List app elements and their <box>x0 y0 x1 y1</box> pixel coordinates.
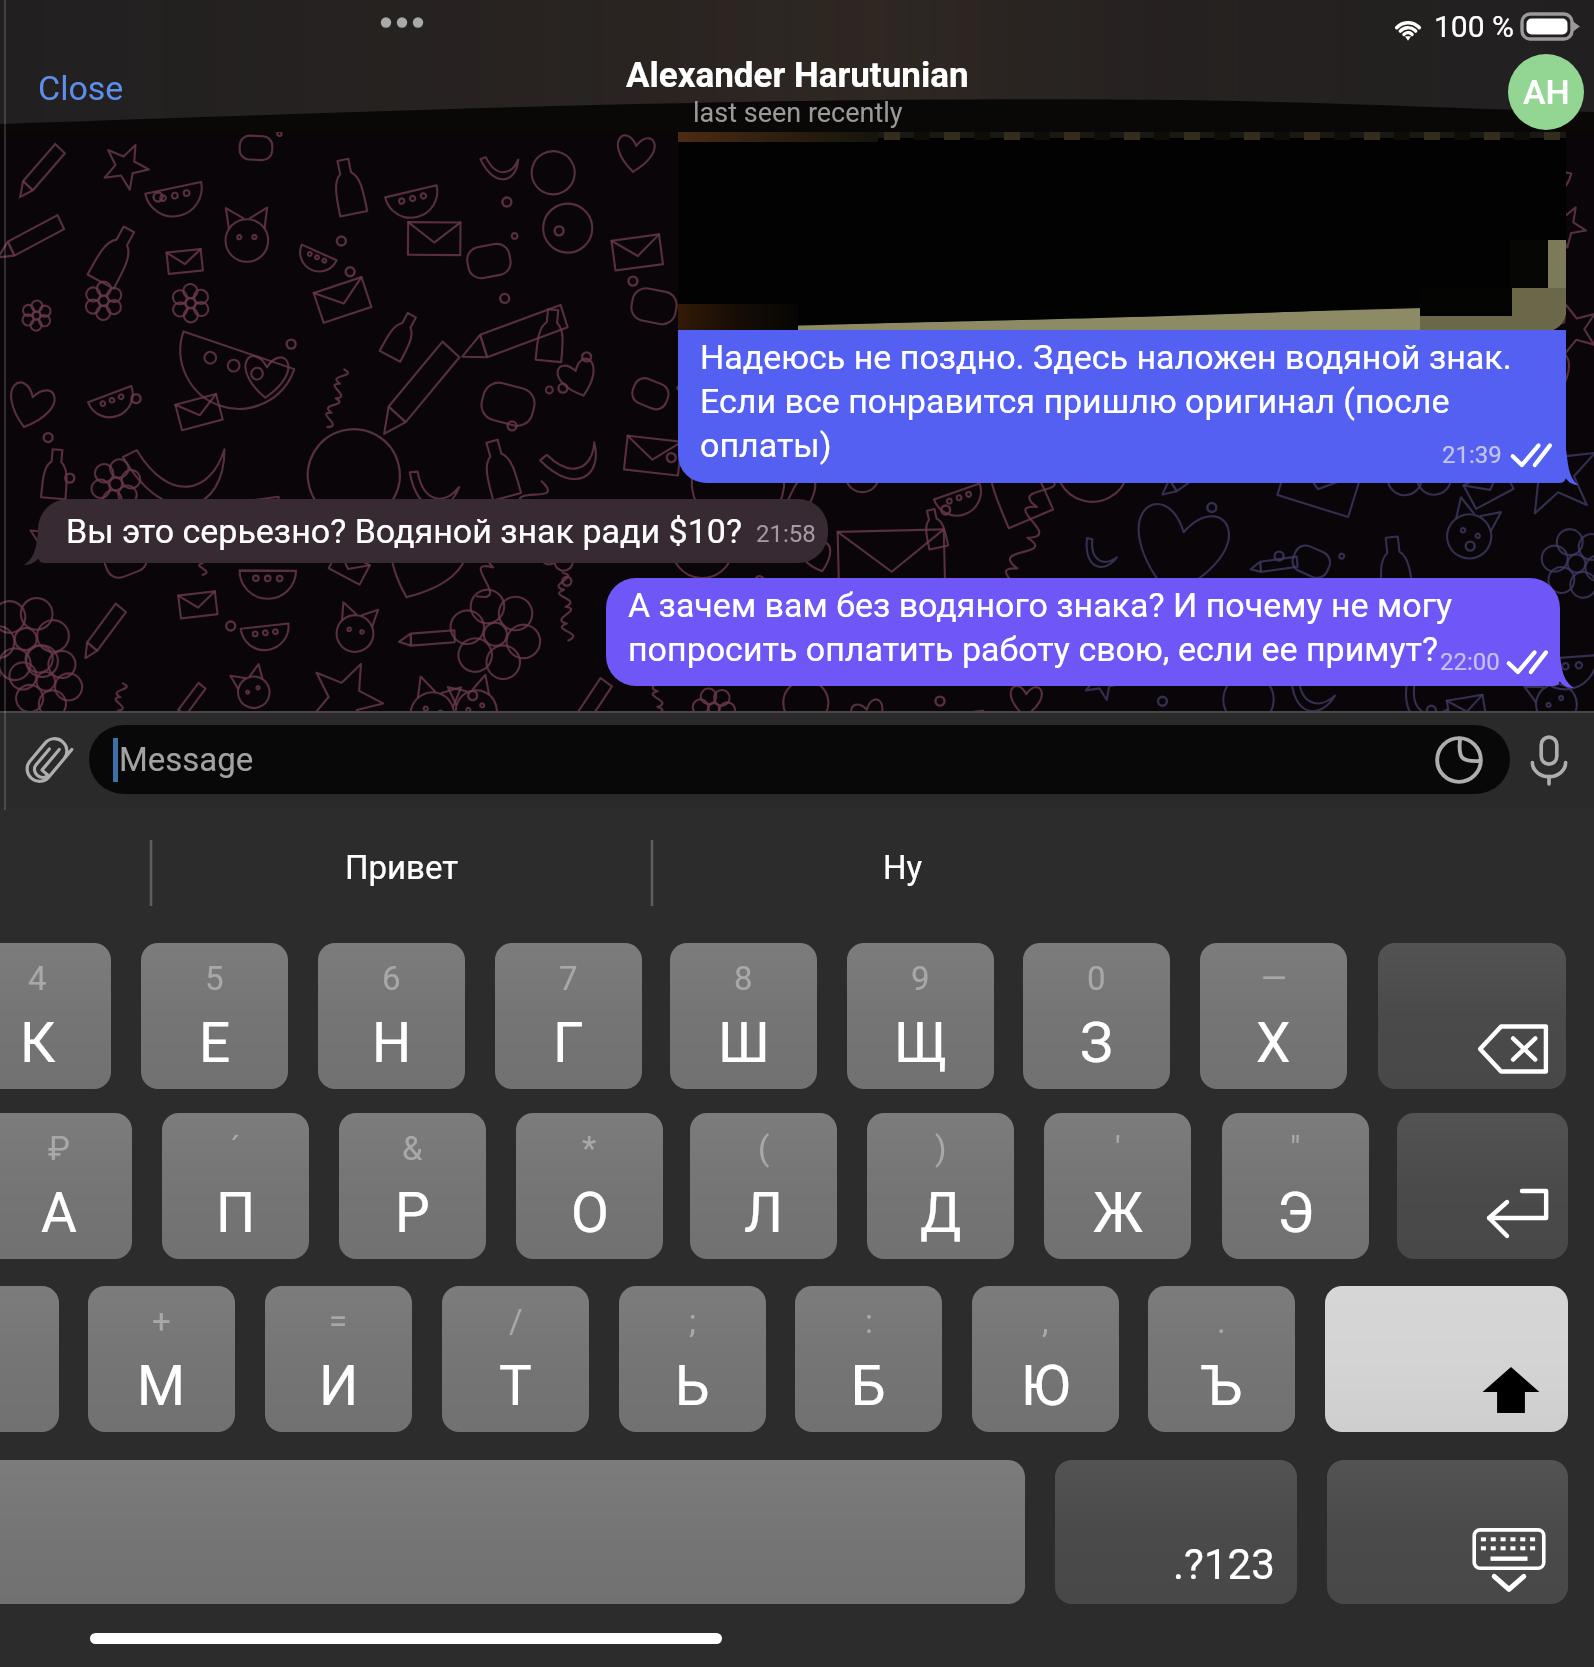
staticText: Ж <box>1093 1181 1143 1245</box>
staticText: Х <box>1256 1011 1291 1075</box>
staticText: З <box>1080 1011 1113 1075</box>
staticText: — <box>1261 959 1287 998</box>
button[interactable]: Б <box>795 1286 942 1432</box>
staticText: Привет <box>345 848 459 887</box>
button[interactable]: Р <box>339 1113 486 1259</box>
staticText: Надеюсь не поздно. Здесь наложен водяной… <box>700 337 1512 465</box>
staticText: И <box>319 1354 359 1418</box>
staticText: ₽ <box>48 1129 70 1168</box>
button[interactable]: Message <box>89 725 1510 794</box>
staticText: Вы это серьезно? Водяной знак ради $10? <box>66 511 742 551</box>
button[interactable]: М <box>88 1286 235 1432</box>
button[interactable]: А <box>0 1113 132 1259</box>
staticText: ; <box>689 1302 696 1341</box>
staticText: Message <box>119 740 254 779</box>
staticText: Д <box>920 1181 962 1245</box>
button[interactable]: Ж <box>1044 1113 1191 1259</box>
staticText: Ну <box>883 848 923 887</box>
other: Hide keyboard <box>1327 1460 1568 1604</box>
button[interactable] <box>1325 1286 1568 1432</box>
staticText: Н <box>372 1011 412 1075</box>
button[interactable]: Attach <box>8 721 86 799</box>
button[interactable]: Е <box>141 943 288 1089</box>
button[interactable]: Х <box>1200 943 1347 1089</box>
button[interactable]: Щ <box>847 943 994 1089</box>
other: Return <box>1397 1113 1568 1259</box>
staticText: Е <box>199 1011 231 1075</box>
button[interactable]: Т <box>442 1286 589 1432</box>
staticText: 7 <box>559 959 578 998</box>
other: Shift <box>1325 1286 1568 1432</box>
staticText: Г <box>553 1011 584 1075</box>
button[interactable]: О <box>516 1113 663 1259</box>
staticText: 4 <box>28 959 47 998</box>
button[interactable]: Stickers <box>1430 731 1488 789</box>
staticText: К <box>20 1011 56 1075</box>
staticText: " <box>1290 1129 1301 1168</box>
staticText: Ю <box>1021 1354 1071 1418</box>
button[interactable]: Г <box>495 943 642 1089</box>
button[interactable]: Л <box>690 1113 837 1259</box>
staticText: / <box>509 1302 523 1341</box>
button[interactable]: Д <box>867 1113 1014 1259</box>
button[interactable]: Ъ <box>1148 1286 1295 1432</box>
button[interactable]: Close <box>38 68 124 108</box>
button[interactable] <box>1378 943 1566 1089</box>
button[interactable] <box>0 1460 1025 1604</box>
staticText: Р <box>395 1181 430 1245</box>
staticText: & <box>402 1129 423 1168</box>
staticText: 21:58 <box>756 520 816 548</box>
button[interactable]: Ь <box>619 1286 766 1432</box>
staticText: .?123 <box>1173 1540 1275 1589</box>
staticText: ( <box>758 1129 770 1168</box>
other: Backspace <box>1378 943 1566 1089</box>
button[interactable]: Voice message <box>1514 725 1584 795</box>
staticText: ´ <box>230 1129 241 1168</box>
staticText: Alexander Harutunian <box>626 55 969 96</box>
button[interactable]: Ну <box>652 808 1153 930</box>
staticText: 21:39 <box>1442 441 1502 469</box>
button[interactable]: Н <box>318 943 465 1089</box>
staticText: 8 <box>734 959 753 998</box>
button[interactable]: И <box>265 1286 412 1432</box>
staticText: Ш <box>718 1011 770 1075</box>
staticText: , <box>1042 1302 1049 1341</box>
staticText: = <box>329 1302 348 1341</box>
button[interactable]: .?123 <box>1055 1460 1297 1604</box>
staticText: 9 <box>911 959 930 998</box>
staticText: П <box>216 1181 256 1245</box>
staticText: + <box>152 1302 171 1341</box>
staticText: Б <box>851 1354 886 1418</box>
staticText: О <box>571 1181 609 1245</box>
button[interactable]: Ш <box>670 943 817 1089</box>
staticText: ' <box>1115 1129 1121 1168</box>
staticText: 0 <box>1087 959 1106 998</box>
staticText: Т <box>499 1354 532 1418</box>
staticText: . <box>1217 1302 1226 1341</box>
staticText: Close <box>38 68 124 108</box>
staticText: 6 <box>382 959 401 998</box>
staticText: Ь <box>675 1354 710 1418</box>
staticText: Щ <box>894 1011 948 1075</box>
staticText: : <box>865 1302 873 1341</box>
staticText: Э <box>1277 1181 1315 1245</box>
staticText: Ъ <box>1201 1354 1243 1418</box>
button[interactable] <box>1327 1460 1568 1604</box>
button[interactable]: Привет <box>151 808 652 930</box>
staticText: 5 <box>205 959 224 998</box>
staticText: А зачем вам без водяного знака? И почему… <box>628 585 1453 669</box>
button[interactable]: З <box>1023 943 1170 1089</box>
staticText: * <box>582 1129 597 1168</box>
button[interactable]: Ю <box>972 1286 1119 1432</box>
staticText: ) <box>935 1129 947 1168</box>
button[interactable]: Profile <box>1508 54 1584 130</box>
staticText: А <box>41 1181 77 1245</box>
button[interactable]: Э <box>1222 1113 1369 1259</box>
button[interactable] <box>0 1286 59 1432</box>
staticText: Л <box>744 1181 783 1245</box>
button[interactable] <box>1397 1113 1568 1259</box>
staticText: 100 % <box>1434 9 1514 44</box>
button[interactable]: П <box>162 1113 309 1259</box>
staticText: AH <box>1523 72 1570 112</box>
button[interactable]: К <box>0 943 111 1089</box>
